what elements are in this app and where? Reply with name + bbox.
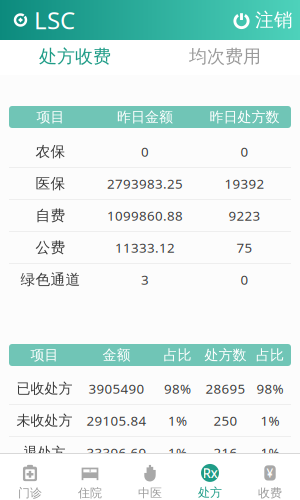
staticText: 3905490 bbox=[88, 379, 144, 398]
staticText: 98% bbox=[256, 379, 283, 398]
staticText: 未收处方 bbox=[16, 412, 72, 429]
staticText: 1% bbox=[260, 411, 279, 430]
button[interactable]: 处方收费 bbox=[0, 40, 150, 75]
staticText: 项目 bbox=[36, 108, 64, 126]
staticText: Rx bbox=[202, 464, 217, 482]
staticText: 0 bbox=[141, 142, 149, 161]
staticText: 绿色通道 bbox=[20, 270, 80, 289]
staticText: 28695 bbox=[205, 379, 245, 398]
button[interactable]: 住院 bbox=[60, 454, 120, 500]
staticText: 金额 bbox=[102, 346, 130, 364]
staticText: ¥ bbox=[266, 465, 273, 481]
button[interactable]: 注销 bbox=[233, 8, 293, 32]
staticText: 29105.84 bbox=[86, 411, 146, 430]
staticText: 9223 bbox=[228, 206, 260, 225]
staticText: 占比 bbox=[163, 346, 191, 364]
staticText: 住院 bbox=[78, 485, 102, 500]
staticText: 项目 bbox=[30, 346, 58, 364]
staticText: 均次费用 bbox=[189, 45, 261, 68]
staticText: 98% bbox=[164, 379, 191, 398]
staticText: 0 bbox=[240, 270, 248, 289]
button[interactable]: 中医 bbox=[120, 454, 180, 500]
button[interactable]: ¥ bbox=[240, 454, 300, 500]
staticText: 农保 bbox=[35, 142, 65, 161]
staticText: 中医 bbox=[138, 485, 162, 500]
staticText: 33396.69 bbox=[86, 443, 146, 462]
staticText: 1099860.88 bbox=[107, 206, 183, 225]
staticText: 处方 bbox=[198, 485, 222, 500]
staticText: 1% bbox=[168, 411, 187, 430]
staticText: 处方收费 bbox=[39, 45, 111, 68]
staticText: 2793983.25 bbox=[107, 174, 183, 193]
staticText: 昨日金额 bbox=[117, 108, 173, 126]
staticText: 250 bbox=[213, 411, 237, 430]
staticText: 11333.12 bbox=[115, 238, 175, 257]
staticText: 216 bbox=[213, 443, 237, 462]
staticText: 退处方 bbox=[23, 444, 65, 461]
staticText: LSC bbox=[34, 4, 75, 36]
staticText: 门诊 bbox=[18, 485, 42, 500]
staticText: 自费 bbox=[35, 206, 65, 225]
staticText: 注销 bbox=[255, 8, 293, 32]
staticText: 75 bbox=[236, 238, 252, 257]
button[interactable]: 均次费用 bbox=[150, 40, 300, 75]
staticText: 1% bbox=[260, 443, 279, 462]
staticText: 收费 bbox=[258, 485, 282, 500]
staticText: 处方数 bbox=[204, 346, 246, 364]
staticText: 公费 bbox=[35, 238, 65, 257]
staticText: 19392 bbox=[224, 174, 264, 193]
staticText: 占比 bbox=[256, 346, 284, 364]
staticText: 3 bbox=[141, 270, 149, 289]
staticText: 已收处方 bbox=[16, 380, 72, 397]
button[interactable]: Rx bbox=[180, 454, 240, 500]
staticText: 1% bbox=[168, 443, 187, 462]
staticText: 昨日处方数 bbox=[209, 108, 279, 126]
staticText: 0 bbox=[240, 142, 248, 161]
button[interactable]: 门诊 bbox=[0, 454, 60, 500]
staticText: 医保 bbox=[35, 174, 65, 193]
